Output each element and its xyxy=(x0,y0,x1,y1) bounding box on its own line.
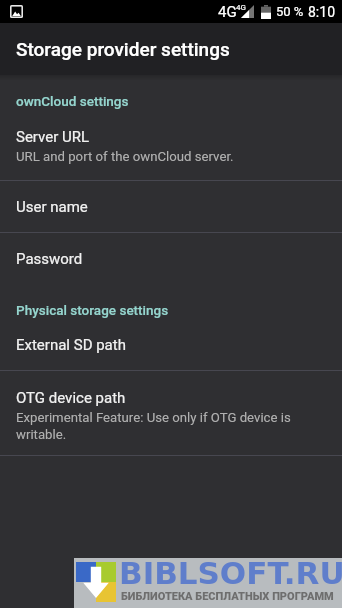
staticText: Storage provider settings xyxy=(16,38,230,60)
staticText: Password xyxy=(16,250,83,268)
staticText: Experimental Feature: Use only if OTG de… xyxy=(16,410,302,442)
staticText: 50 % xyxy=(276,4,304,19)
button[interactable]: Password xyxy=(0,233,342,284)
staticText: OTG device path xyxy=(16,389,126,407)
staticText: 8:10 xyxy=(308,4,335,20)
staticText: 4G xyxy=(236,3,246,12)
staticText: External SD path xyxy=(16,336,126,354)
staticText: User name xyxy=(16,198,88,216)
other: Screenshot saved xyxy=(10,5,23,18)
staticText: Physical storage settings xyxy=(16,302,169,318)
button[interactable]: OTG device path xyxy=(0,371,342,455)
staticText: 4G xyxy=(218,3,237,21)
button[interactable]: External SD path xyxy=(0,319,342,370)
staticText: БИБЛИОТЕКА БЕСПЛАТНЫХ ПРОГРАММ xyxy=(121,590,334,603)
button[interactable]: User name xyxy=(0,181,342,232)
staticText: Server URL xyxy=(16,128,90,146)
staticText: BIBLSOFT.RU xyxy=(119,555,342,591)
button[interactable]: Server URL xyxy=(0,110,342,180)
staticText: ownCloud settings xyxy=(16,93,129,109)
staticText: URL and port of the ownCloud server. xyxy=(16,149,234,164)
